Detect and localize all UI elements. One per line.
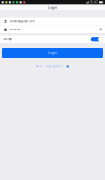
staticText: Login <box>48 51 57 55</box>
staticText: Forgot password <box>46 65 62 68</box>
staticText: 12:47 <box>90 0 98 4</box>
staticText: someone@gmail.com <box>10 20 35 23</box>
button[interactable]: Forgot password <box>46 65 62 68</box>
button[interactable]: Sign up <box>36 65 42 68</box>
staticText: Auto login <box>3 38 11 40</box>
button[interactable]: Guest login <box>66 65 69 68</box>
button[interactable]: Auto login <box>91 37 103 42</box>
staticText: Login <box>48 6 57 10</box>
button[interactable]: Login <box>2 48 103 58</box>
staticText: Sign up <box>36 65 42 68</box>
